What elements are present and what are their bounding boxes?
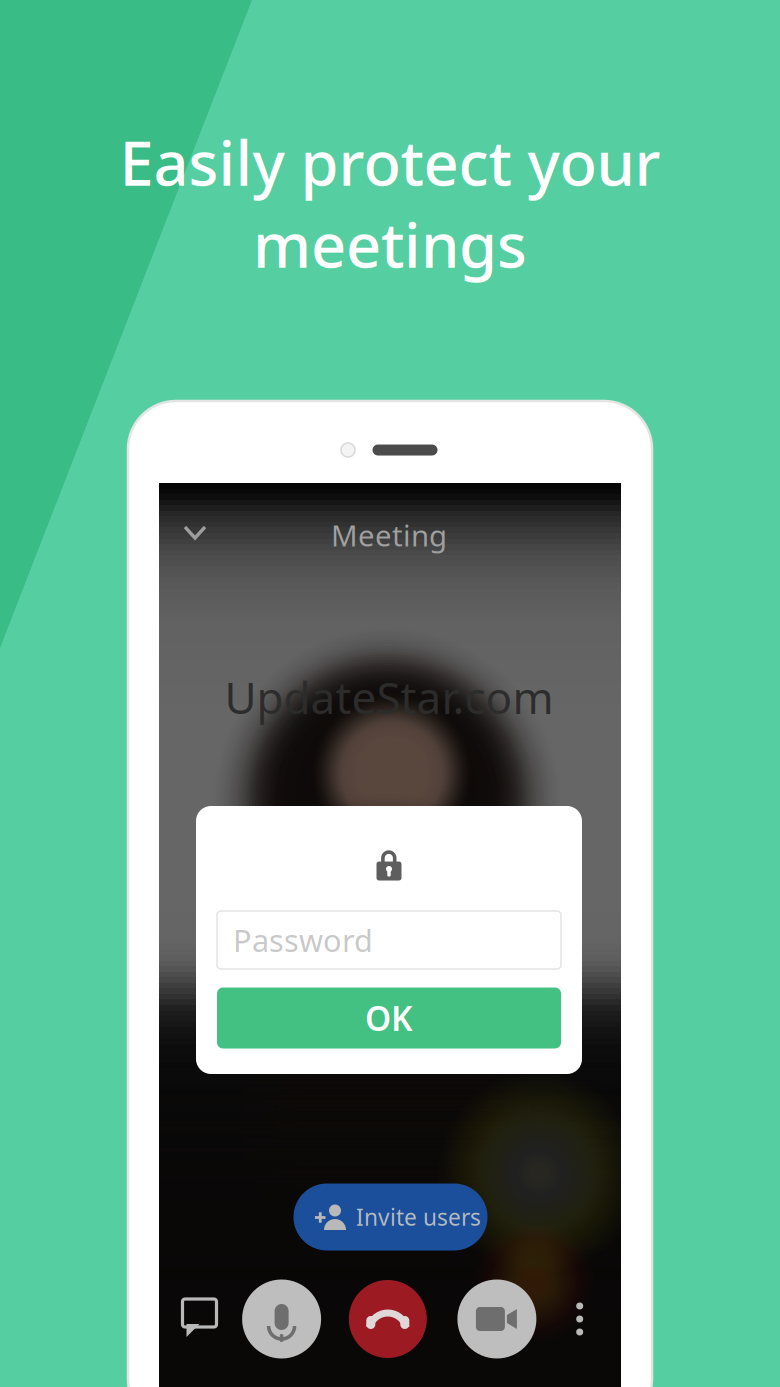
- staticText: Invite users: [356, 1202, 481, 1232]
- staticText: Meeting: [331, 515, 447, 554]
- button[interactable]: End call: [349, 1280, 427, 1358]
- button[interactable]: Chat: [168, 1280, 230, 1358]
- staticText: Easily protect your: [119, 121, 660, 203]
- staticText: UpdateStar.com: [224, 668, 553, 726]
- button[interactable]: Minimize meeting: [166, 507, 224, 559]
- button[interactable]: Mute microphone: [242, 1279, 321, 1358]
- staticText: OK: [365, 996, 413, 1040]
- button[interactable]: Invite users: [293, 1183, 487, 1250]
- button[interactable]: More options: [556, 1280, 604, 1358]
- staticText: Password: [233, 920, 373, 960]
- button[interactable]: Turn off camera: [457, 1279, 536, 1358]
- button[interactable]: OK: [217, 987, 561, 1048]
- staticText: meetings: [253, 203, 527, 285]
